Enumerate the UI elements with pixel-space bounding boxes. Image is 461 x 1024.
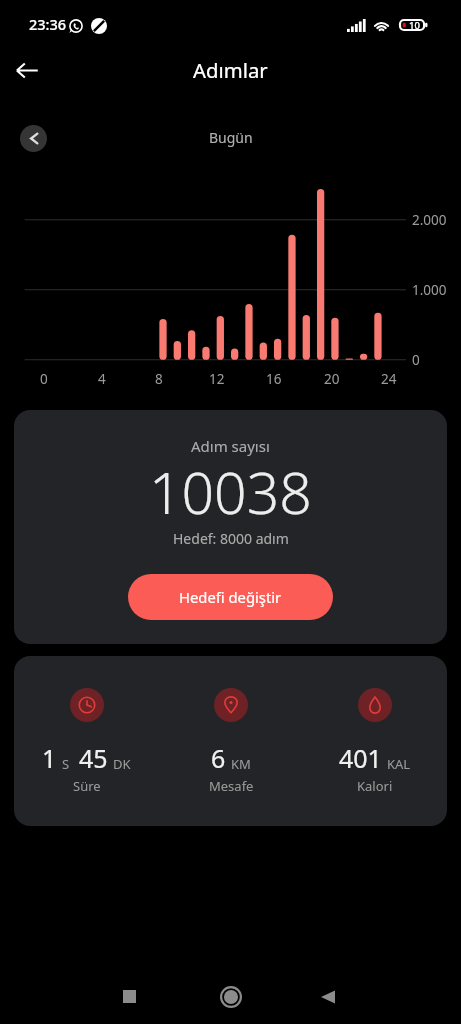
staticText: 6 xyxy=(211,741,226,775)
button[interactable]: Back xyxy=(3,46,51,94)
staticText: 8 xyxy=(155,370,163,388)
staticText: Mesafe xyxy=(209,777,254,795)
staticText: 16 xyxy=(266,370,282,388)
staticText: 24 xyxy=(381,370,397,388)
staticText: 10 xyxy=(409,19,420,31)
staticText: 12 xyxy=(209,370,225,388)
button[interactable]: Back xyxy=(303,972,352,1021)
staticText: Kalori xyxy=(357,777,393,795)
staticText: 1.000 xyxy=(412,281,447,299)
staticText: 0 xyxy=(40,370,48,388)
button[interactable]: Recents xyxy=(105,972,154,1021)
staticText: KM xyxy=(231,755,251,773)
button[interactable]: Hedefi değiştir xyxy=(128,574,333,620)
button[interactable]: Previous day xyxy=(20,125,47,152)
staticText: Adımlar xyxy=(193,56,268,84)
staticText: Hedef: 8000 adım xyxy=(173,529,289,548)
staticText: KAL xyxy=(387,755,411,773)
staticText: 23:36 xyxy=(29,14,67,34)
staticText: 4 xyxy=(98,370,106,388)
staticText: 10038 xyxy=(149,453,312,531)
staticText: 1 xyxy=(42,741,57,775)
staticText: S xyxy=(62,755,70,773)
staticText: 45 xyxy=(79,741,108,775)
staticText: 2.000 xyxy=(412,211,447,229)
staticText: 0 xyxy=(412,351,420,369)
staticText: DK xyxy=(113,755,131,773)
staticText: 20 xyxy=(324,370,340,388)
staticText: Hedefi değiştir xyxy=(179,587,282,607)
button[interactable]: Home xyxy=(206,972,255,1021)
staticText: Süre xyxy=(73,777,101,795)
staticText: Bugün xyxy=(209,128,253,147)
staticText: Adım sayısı xyxy=(191,436,270,456)
staticText: 401 xyxy=(339,741,382,775)
